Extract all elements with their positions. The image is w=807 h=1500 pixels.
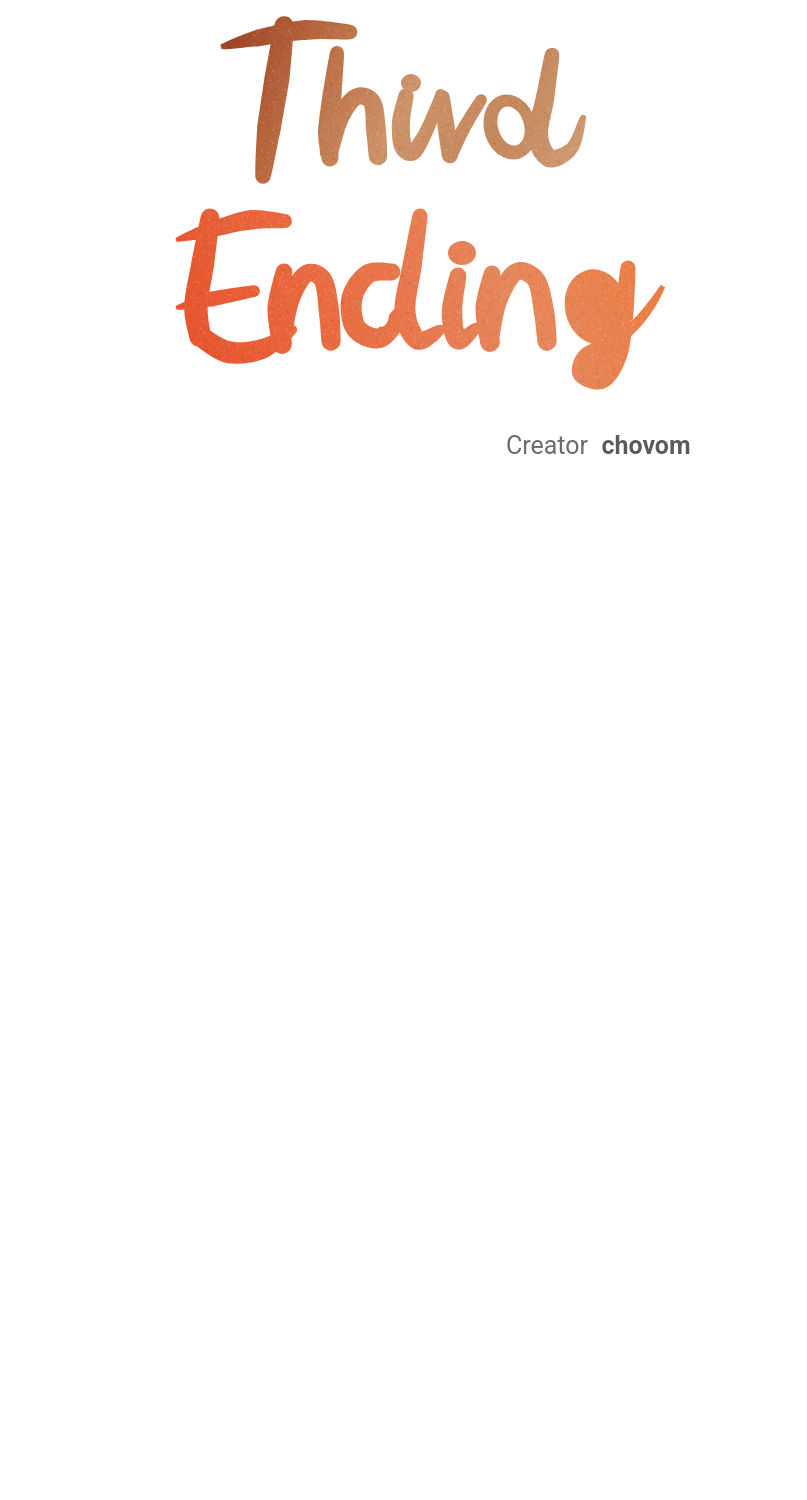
staticText: chovom [589,431,691,460]
button[interactable]: Creator [506,431,691,460]
staticText: Creator [506,431,589,460]
